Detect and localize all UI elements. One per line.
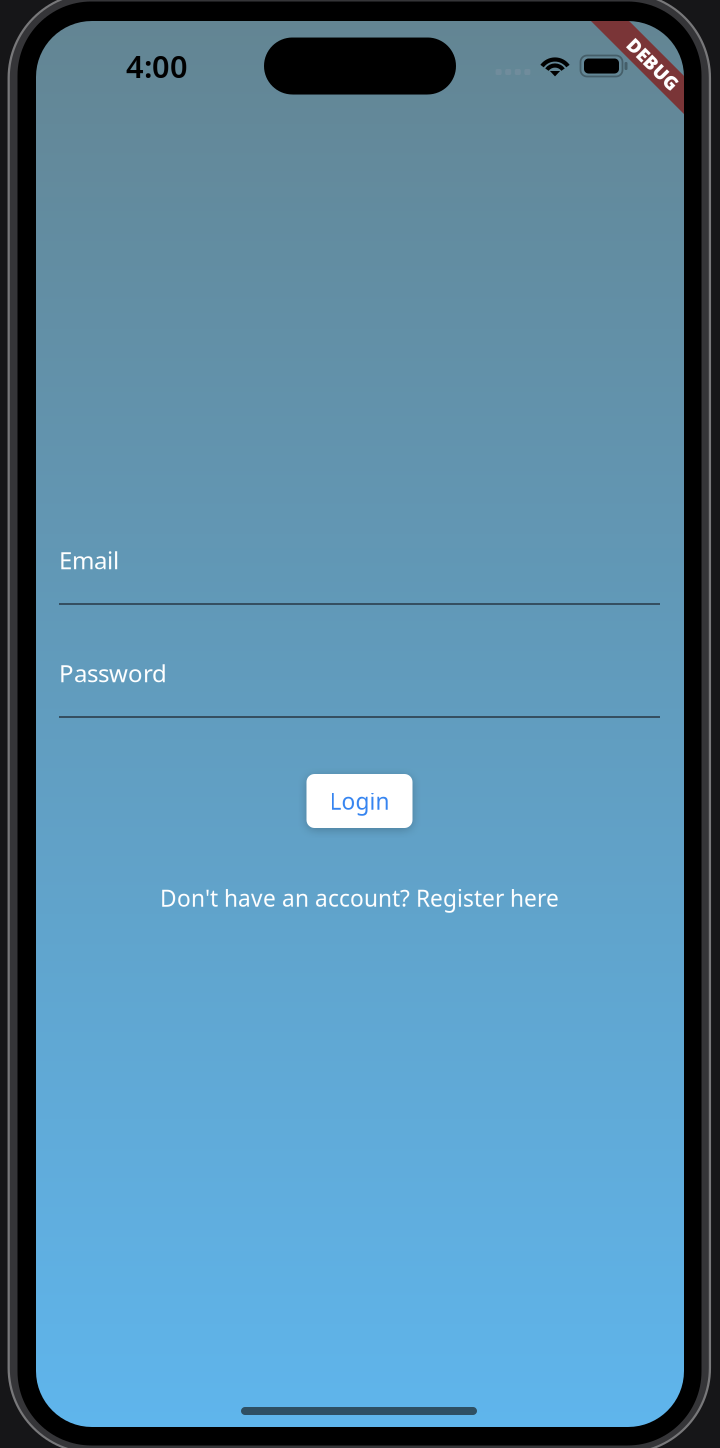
staticText: 4:00 — [126, 46, 188, 86]
button[interactable]: Password — [59, 658, 660, 718]
staticText: Email — [59, 544, 119, 576]
staticText: DEBUG — [620, 52, 685, 76]
button[interactable]: Don't have an account? Register here — [160, 883, 559, 913]
staticText: Don't have an account? Register here — [160, 883, 559, 913]
button[interactable]: Email — [59, 545, 660, 605]
button[interactable]: Login — [306, 774, 412, 828]
staticText: Login — [329, 786, 389, 816]
staticText: Password — [59, 657, 167, 689]
